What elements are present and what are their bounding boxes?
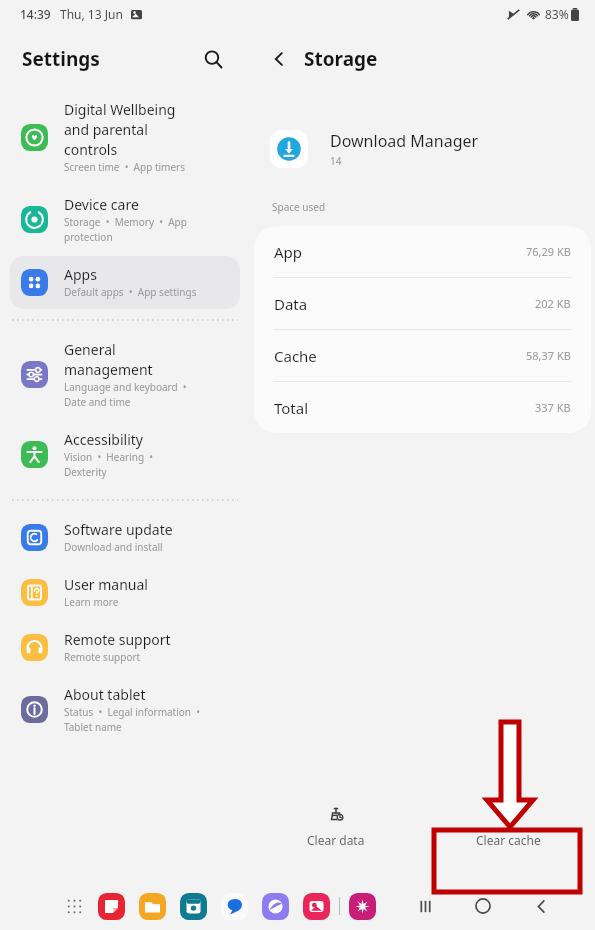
staticText: Download and install	[64, 540, 163, 554]
button[interactable]: Total	[254, 382, 591, 433]
staticText: Digital Wellbeing and parental controls	[64, 100, 176, 159]
staticText: Cache	[274, 346, 317, 366]
button[interactable]: Accessibility	[10, 421, 240, 489]
staticText: Data	[274, 294, 308, 314]
button[interactable]: User manual	[10, 566, 240, 619]
staticText: Space used	[272, 200, 326, 214]
button[interactable]: Search	[196, 42, 230, 76]
staticText: 14	[330, 154, 342, 168]
button[interactable]: star	[349, 893, 376, 920]
button[interactable]: folder	[139, 893, 166, 920]
staticText: App	[274, 242, 303, 262]
staticText: Language and keyboard • Date and time	[64, 380, 187, 409]
staticText: 76,29 KB	[526, 244, 571, 259]
button[interactable]: Device care	[10, 186, 240, 254]
staticText: Thu, 13 Jun	[60, 6, 123, 22]
button[interactable]: gallery	[303, 893, 330, 920]
staticText: Remote support	[64, 650, 141, 664]
staticText: Total	[274, 398, 309, 418]
staticText: Apps	[64, 265, 97, 284]
staticText: Device care	[64, 195, 139, 214]
button[interactable]: msg	[221, 893, 248, 920]
button[interactable]: Apps	[10, 256, 240, 309]
button[interactable]: Clear cache	[422, 798, 595, 854]
button[interactable]: note	[98, 893, 125, 920]
button[interactable]: All apps	[60, 892, 88, 920]
button[interactable]: Back	[262, 42, 296, 76]
button[interactable]: Home	[465, 888, 501, 924]
button[interactable]: Remote support	[10, 621, 240, 674]
staticText: Storage • Memory • App protection	[64, 215, 187, 244]
staticText: Software update	[64, 520, 173, 539]
staticText: 14:39	[20, 6, 51, 22]
button[interactable]: Software update	[10, 511, 240, 564]
staticText: Status • Legal information • Tablet name	[64, 705, 200, 734]
staticText: Clear cache	[476, 832, 541, 848]
staticText: Accessibility	[64, 430, 143, 449]
staticText: User manual	[64, 575, 148, 594]
staticText: About tablet	[64, 685, 146, 704]
button[interactable]: Back	[523, 888, 559, 924]
button[interactable]: General management	[10, 331, 240, 419]
button[interactable]: App	[254, 226, 591, 277]
button[interactable]: About tablet	[10, 676, 240, 744]
staticText: Default apps • App settings	[64, 285, 197, 299]
button[interactable]: Recents	[407, 888, 443, 924]
staticText: Learn more	[64, 595, 119, 609]
button[interactable]: Data	[254, 278, 591, 329]
button[interactable]: cal	[180, 893, 207, 920]
button[interactable]: browser	[262, 893, 289, 920]
staticText: 58,37 KB	[526, 348, 571, 363]
button[interactable]: Cache	[254, 330, 591, 381]
staticText: Storage	[304, 46, 378, 72]
staticText: 337 KB	[535, 400, 571, 415]
staticText: 83%	[545, 6, 569, 22]
staticText: Vision • Hearing • Dexterity	[64, 450, 153, 479]
staticText: Clear data	[307, 832, 365, 848]
staticText: 202 KB	[535, 296, 571, 311]
staticText: Settings	[22, 46, 100, 72]
button[interactable]: Digital Wellbeing and parental controls	[10, 91, 240, 184]
staticText: General management	[64, 340, 153, 379]
button[interactable]: Clear data	[250, 798, 422, 854]
staticText: Download Manager	[330, 130, 479, 152]
staticText: Screen time • App timers	[64, 160, 186, 174]
staticText: Remote support	[64, 630, 171, 649]
